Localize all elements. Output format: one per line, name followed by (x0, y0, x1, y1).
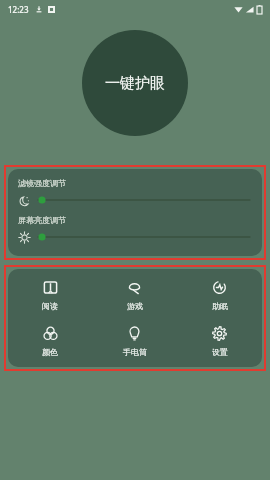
button[interactable] (38, 230, 250, 244)
staticText: 手电筒 (123, 347, 147, 357)
button[interactable]: 阅读 (8, 279, 92, 311)
staticText: 游戏 (127, 301, 143, 311)
staticText: 助眠 (212, 301, 228, 311)
button[interactable] (38, 193, 250, 207)
staticText: 阅读 (42, 301, 58, 311)
button[interactable]: 游戏 (92, 279, 177, 311)
staticText: 一键护眼 (105, 74, 165, 93)
staticText: 12:23 (8, 4, 29, 15)
staticText: 滤镜强度调节 (18, 178, 66, 188)
button[interactable]: 一键护眼 (82, 30, 188, 136)
staticText: 屏幕亮度调节 (18, 215, 66, 225)
button[interactable]: 手电筒 (92, 325, 177, 357)
staticText: 颜色 (42, 347, 58, 357)
button[interactable]: 助眠 (177, 279, 262, 311)
button[interactable]: 设置 (177, 325, 262, 357)
button[interactable]: 颜色 (8, 325, 92, 357)
staticText: 设置 (212, 347, 228, 357)
